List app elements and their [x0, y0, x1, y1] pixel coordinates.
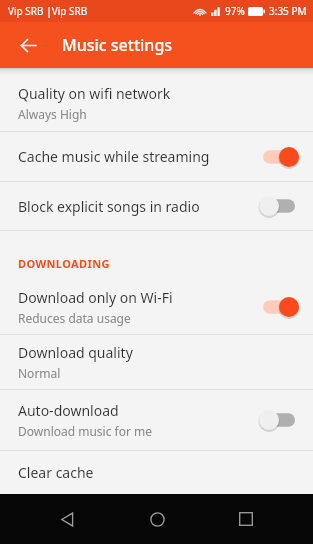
button[interactable]: Switch off — [253, 407, 295, 433]
staticText: Vip SRB |Vip SRB — [8, 4, 88, 18]
staticText: Reduces data usage — [18, 310, 131, 326]
button[interactable]: Switch on — [253, 144, 295, 170]
staticText: 3:35 PM — [269, 4, 307, 18]
button[interactable]: Switch off — [253, 193, 295, 219]
staticText: Download music for me — [18, 423, 153, 439]
button[interactable]: Home — [135, 497, 179, 541]
staticText: Music settings — [62, 34, 173, 56]
staticText: Auto-download — [18, 401, 119, 420]
staticText: Clear cache — [18, 463, 94, 482]
staticText: Cache music while streaming — [18, 147, 210, 166]
staticText: Always High — [18, 106, 87, 122]
button[interactable]: Quality on wifi network — [0, 74, 313, 131]
staticText: Normal — [18, 365, 61, 381]
staticText: DOWNLOADING — [18, 256, 110, 271]
button[interactable]: Back — [45, 497, 89, 541]
button[interactable]: Clear cache — [0, 451, 313, 494]
staticText: Block explicit songs in radio — [18, 197, 200, 216]
staticText: Download quality — [18, 343, 133, 362]
button[interactable]: Cache music while streaming — [0, 132, 313, 181]
button[interactable]: Switch on — [253, 294, 295, 320]
staticText: Download only on Wi-Fi — [18, 288, 173, 307]
button[interactable]: Recent apps — [224, 497, 268, 541]
button[interactable]: Back — [10, 27, 46, 63]
staticText: 97% — [225, 4, 245, 18]
button[interactable]: Auto-download — [0, 390, 313, 450]
staticText: Quality on wifi network — [18, 84, 171, 103]
button[interactable]: Block explicit songs in radio — [0, 182, 313, 230]
button[interactable]: Download quality — [0, 335, 313, 389]
button[interactable]: Download only on Wi-Fi — [0, 279, 313, 334]
